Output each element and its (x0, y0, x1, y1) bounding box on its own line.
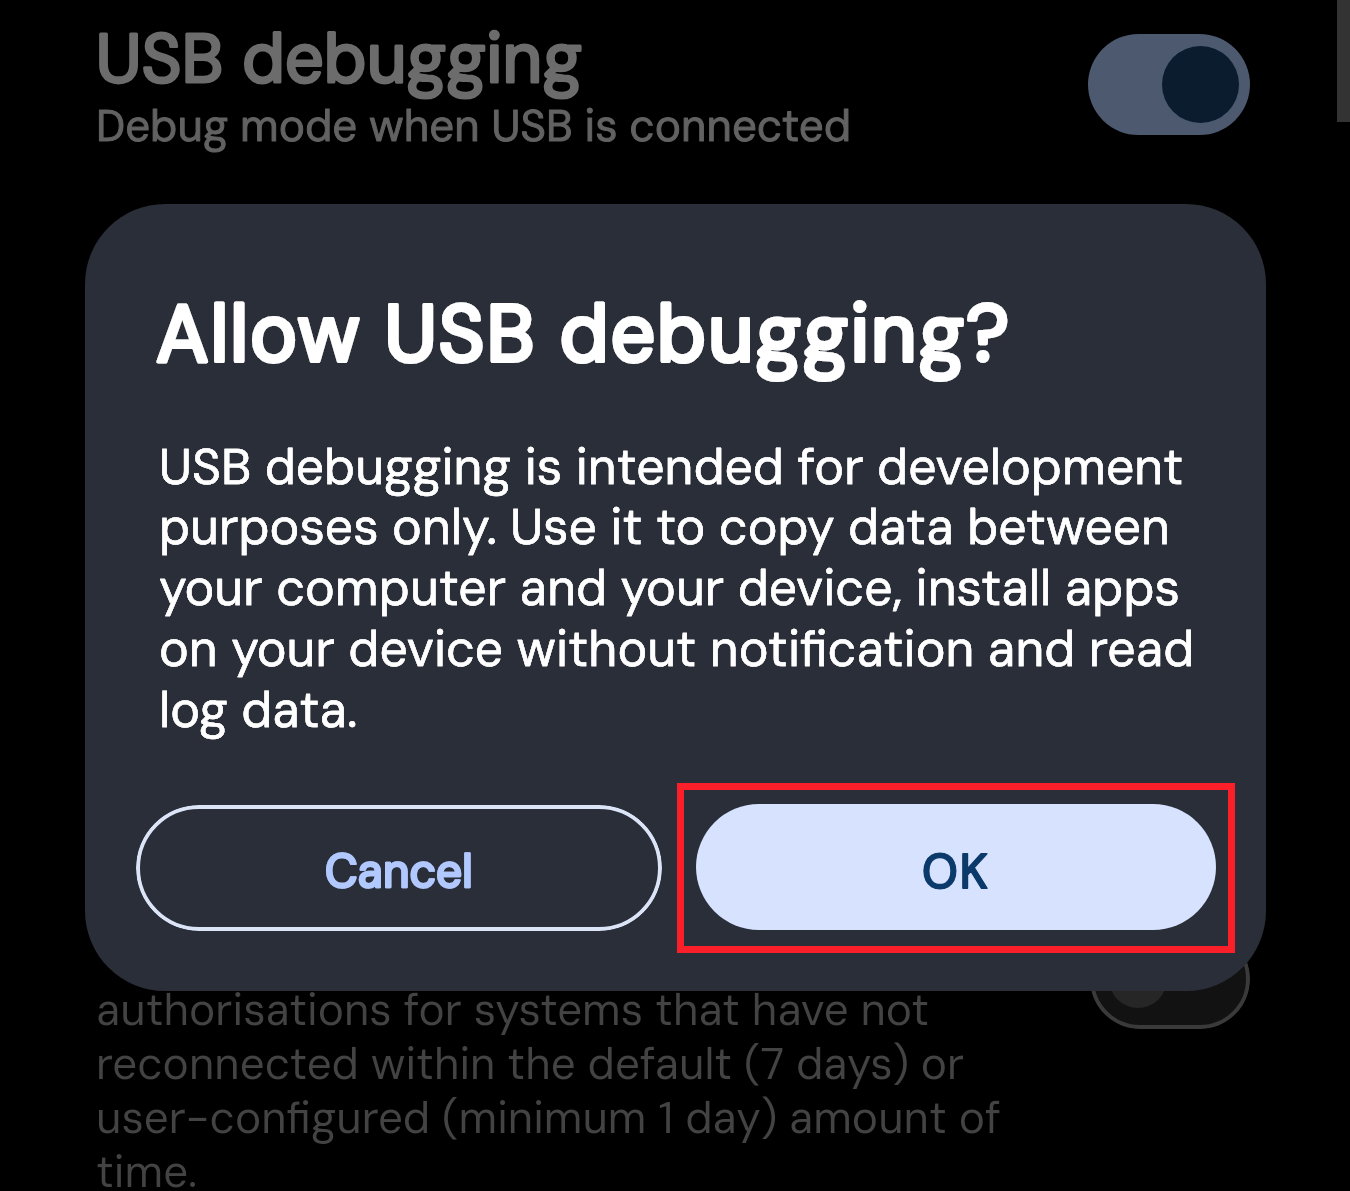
staticText: Allow USB debugging? (156, 283, 1012, 386)
staticText: authorisations for systems that have not… (96, 981, 1001, 1191)
button[interactable]: Cancel (136, 805, 662, 931)
button[interactable]: Revoke USB debugging authorisations swit… (1090, 929, 1250, 1029)
staticText: OK (922, 840, 990, 902)
staticText: Debug mode when USB is connected (96, 97, 852, 154)
staticText: USB debugging (96, 14, 583, 104)
staticText: USB debugging is intended for developmen… (159, 434, 1219, 743)
button[interactable]: USB debugging switch (1088, 34, 1250, 135)
staticText: Allow USB debugging? (156, 283, 1012, 386)
staticText: Cancel (325, 841, 473, 901)
staticText: USB debugging is intended for developmen… (159, 434, 1219, 743)
button[interactable]: OK (696, 804, 1216, 930)
staticText: OK (922, 840, 990, 902)
staticText: Debug mode when USB is connected (96, 97, 852, 154)
staticText: Cancel (325, 841, 473, 901)
staticText: USB debugging (96, 14, 583, 104)
